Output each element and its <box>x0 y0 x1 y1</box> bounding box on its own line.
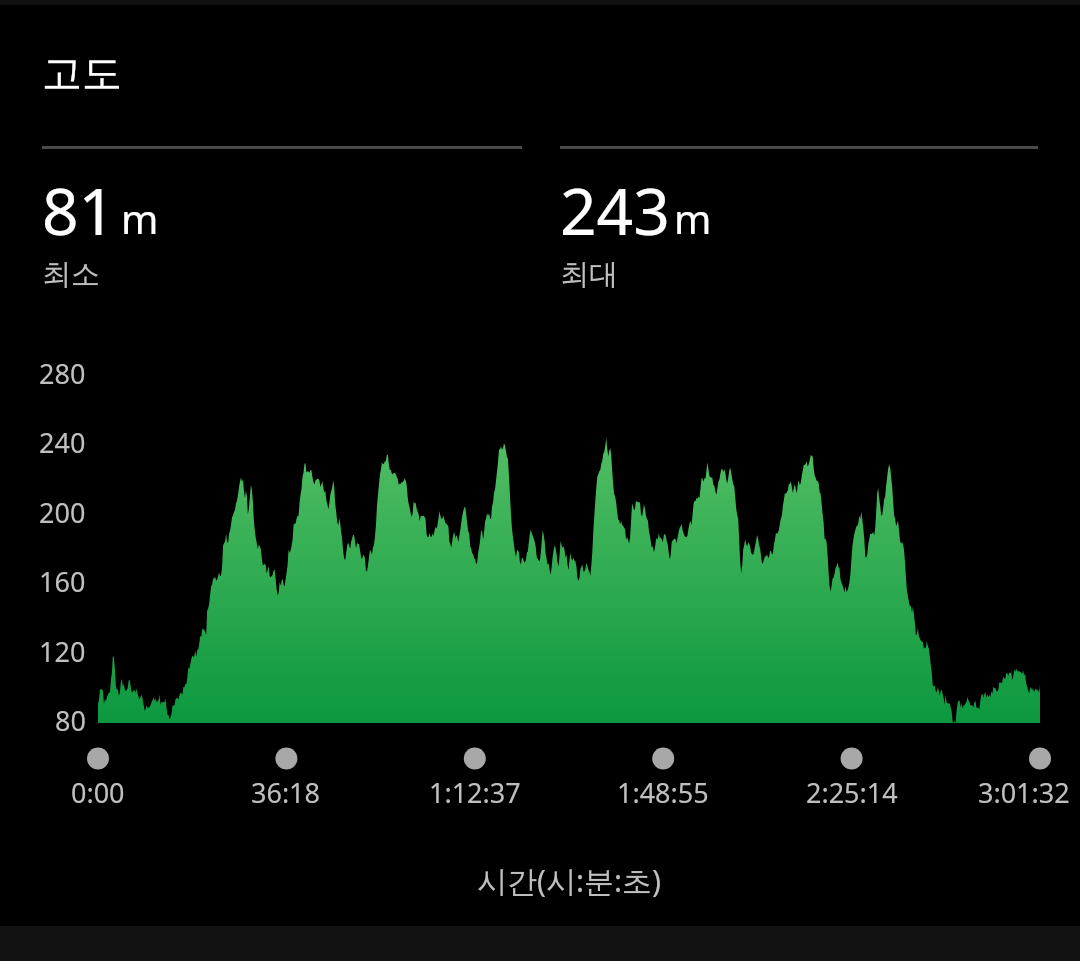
button[interactable]: 243 <box>560 146 1038 286</box>
staticText: 3:01:32 <box>978 774 1070 811</box>
staticText: 최소 <box>42 256 100 293</box>
button[interactable]: 고도 그래프 <box>0 340 1080 740</box>
staticText: 1:48:55 <box>617 774 709 811</box>
staticText: 280 <box>39 355 86 392</box>
staticText: 36:18 <box>251 774 321 811</box>
staticText: 고도 <box>42 48 122 98</box>
staticText: 200 <box>39 494 86 531</box>
staticText: 120 <box>39 633 86 670</box>
staticText: 2:25:14 <box>806 774 898 811</box>
staticText: 81 <box>42 167 116 254</box>
staticText: 시간(시:분:초) <box>477 860 662 901</box>
staticText: 160 <box>39 563 86 600</box>
staticText: 최대 <box>560 256 618 293</box>
staticText: 240 <box>39 424 86 461</box>
staticText: 243 <box>560 167 670 254</box>
staticText: 0:00 <box>71 774 125 811</box>
staticText: 1:12:37 <box>429 774 521 811</box>
staticText: m <box>121 191 159 245</box>
staticText: 80 <box>55 702 86 739</box>
staticText: m <box>674 191 712 245</box>
button[interactable]: 81 <box>42 146 522 286</box>
